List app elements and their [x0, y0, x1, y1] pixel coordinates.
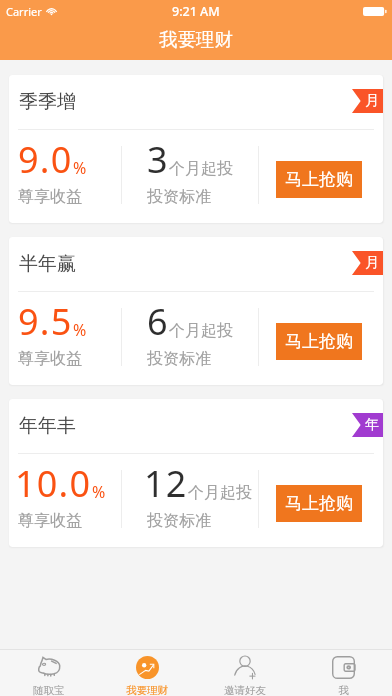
- button[interactable]: 我: [294, 650, 392, 696]
- staticText: 半年赢: [19, 252, 76, 276]
- staticText: 邀请好友: [224, 684, 266, 696]
- button[interactable]: 马上抢购: [276, 161, 362, 198]
- staticText: 9:21 AM: [172, 3, 220, 20]
- staticText: 年: [365, 416, 379, 434]
- staticText: 6: [147, 297, 169, 346]
- staticText: 9.0: [18, 135, 73, 184]
- staticText: 月: [365, 92, 379, 110]
- staticText: 马上抢购: [285, 493, 353, 514]
- other: 邀请好友: [234, 656, 256, 679]
- staticText: 我要理财: [126, 684, 168, 696]
- button[interactable]: 半年赢: [9, 237, 383, 385]
- other: 随取宝: [38, 656, 61, 677]
- staticText: 马上抢购: [285, 331, 353, 352]
- staticText: 12: [144, 459, 188, 508]
- button[interactable]: 马上抢购: [276, 323, 362, 360]
- button[interactable]: 邀请好友: [196, 650, 294, 696]
- staticText: 马上抢购: [285, 169, 353, 190]
- staticText: %: [92, 481, 106, 503]
- staticText: %: [73, 157, 87, 179]
- staticText: 我要理财: [159, 28, 233, 51]
- other: 我要理财: [136, 656, 159, 679]
- button[interactable]: 我要理财: [98, 650, 196, 696]
- staticText: 9.5: [18, 297, 73, 346]
- staticText: 个月起投: [169, 159, 233, 179]
- staticText: 投资标准: [147, 349, 211, 369]
- staticText: 个月起投: [188, 483, 252, 503]
- staticText: 尊享收益: [18, 511, 82, 531]
- staticText: 尊享收益: [18, 349, 82, 369]
- button[interactable]: 马上抢购: [276, 485, 362, 522]
- other: 我: [332, 656, 355, 679]
- staticText: 年年丰: [19, 414, 76, 438]
- staticText: Carrier: [6, 4, 42, 19]
- staticText: 投资标准: [147, 511, 211, 531]
- staticText: 我: [338, 684, 349, 696]
- staticText: 个月起投: [169, 321, 233, 341]
- staticText: %: [73, 319, 87, 341]
- staticText: 季季增: [19, 90, 76, 114]
- button[interactable]: 季季增: [9, 75, 383, 223]
- button[interactable]: 年年丰: [9, 399, 383, 547]
- staticText: 3: [147, 135, 169, 184]
- staticText: 10.0: [15, 459, 92, 508]
- staticText: 投资标准: [147, 187, 211, 207]
- staticText: 尊享收益: [18, 187, 82, 207]
- button[interactable]: 随取宝: [0, 650, 98, 696]
- staticText: 月: [365, 254, 379, 272]
- staticText: 随取宝: [33, 684, 65, 696]
